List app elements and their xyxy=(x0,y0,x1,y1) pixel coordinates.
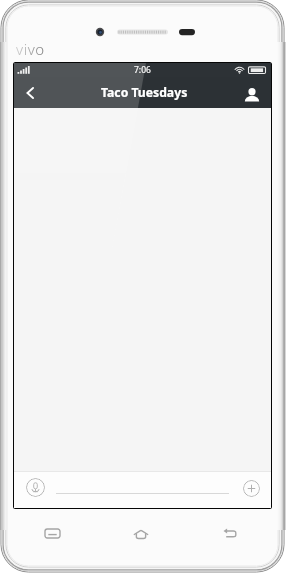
button[interactable]: Contact profile xyxy=(237,77,271,108)
button[interactable]: Back xyxy=(14,77,48,108)
button[interactable]: Record voice message xyxy=(26,478,45,497)
button[interactable]: Recent apps xyxy=(38,519,66,547)
staticText: vivo xyxy=(16,39,45,59)
staticText: 7:06 xyxy=(134,64,151,76)
button[interactable]: Add attachment xyxy=(243,480,260,497)
button[interactable]: Back xyxy=(215,519,243,547)
staticText: Taco Tuesdays xyxy=(101,84,188,101)
button[interactable]: Home xyxy=(127,520,155,548)
